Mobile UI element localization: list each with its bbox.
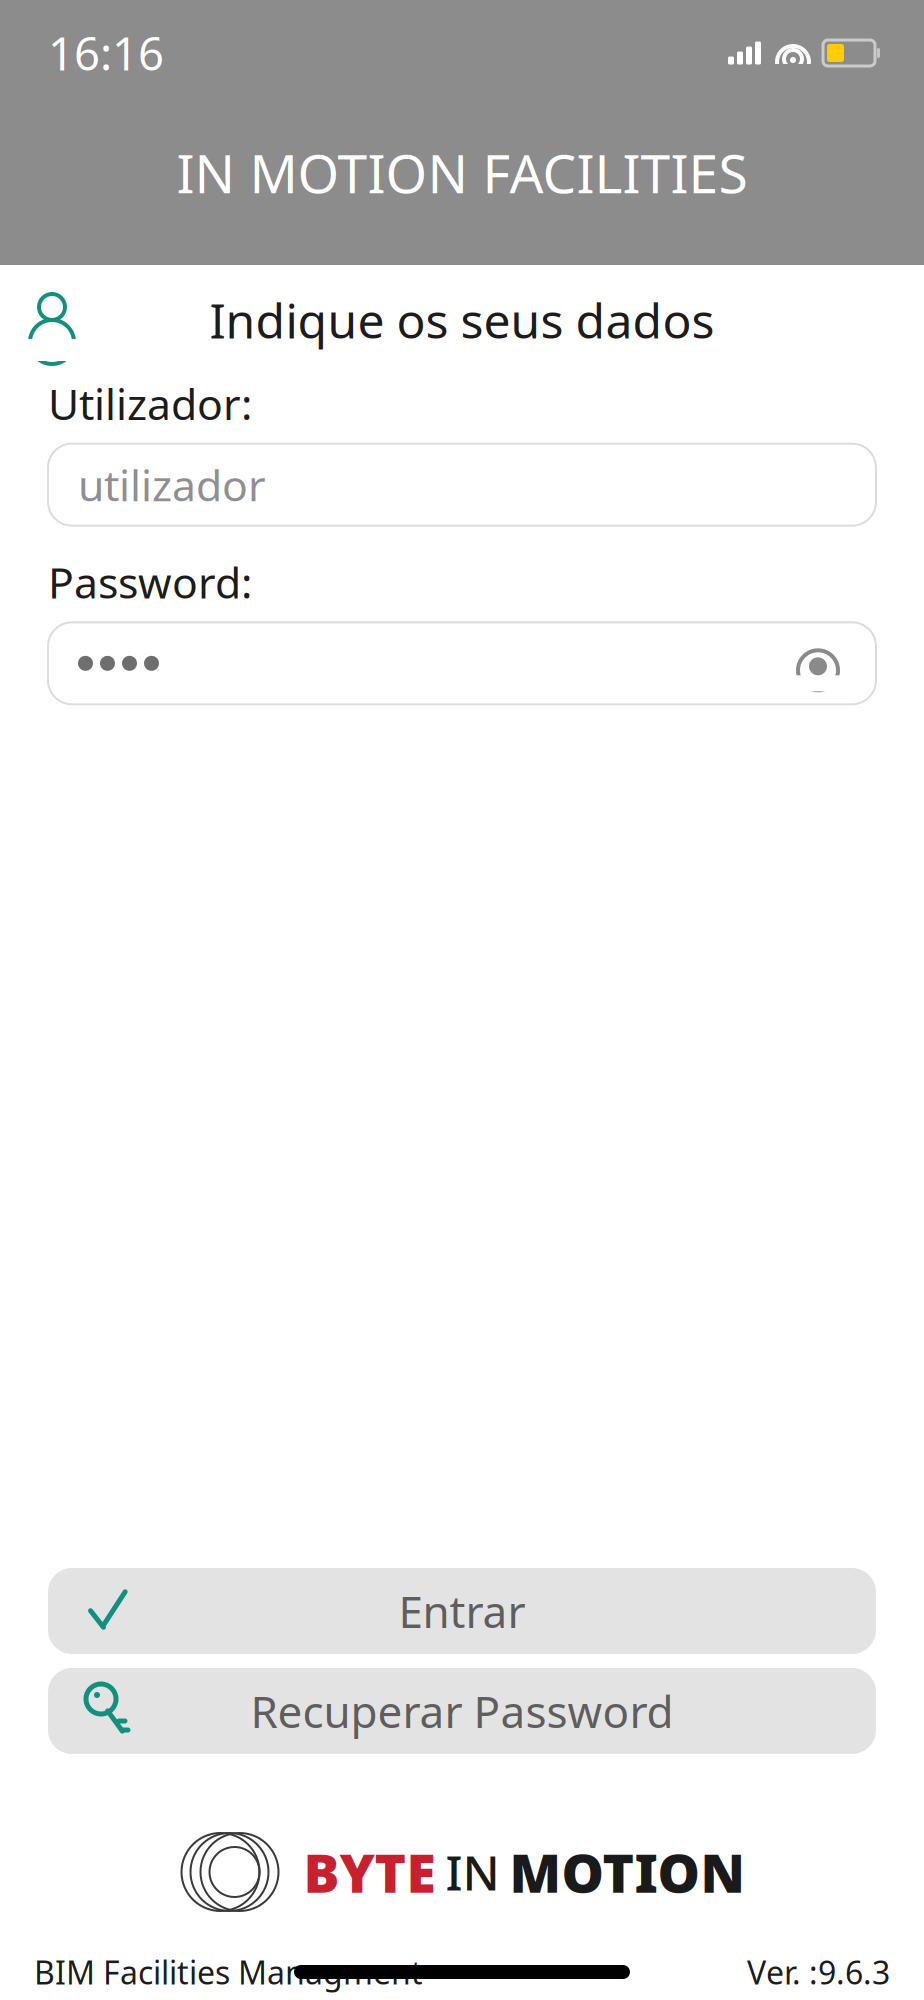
staticText: Recuperar Password <box>250 1682 673 1740</box>
staticText: IN <box>445 1840 499 1904</box>
staticText: IN MOTION FACILITIES <box>176 137 747 208</box>
staticText: Utilizador: <box>48 375 252 432</box>
staticText: Ver. :9.6.3 <box>747 1951 890 1993</box>
staticText: Password: <box>48 554 252 610</box>
staticText: MOTION <box>509 1837 744 1907</box>
staticText: utilizador <box>78 456 266 513</box>
staticText: Indique os seus dados <box>209 288 714 352</box>
button[interactable]: Show password <box>790 635 846 691</box>
button[interactable]: Recuperar Password <box>48 1668 876 1754</box>
staticText: 16:16 <box>48 23 164 83</box>
staticText: BYTE <box>303 1837 435 1907</box>
staticText: Entrar <box>398 1582 525 1640</box>
staticText: BIM Facilities Managment <box>34 1951 423 1993</box>
button[interactable]: Entrar <box>48 1568 876 1654</box>
